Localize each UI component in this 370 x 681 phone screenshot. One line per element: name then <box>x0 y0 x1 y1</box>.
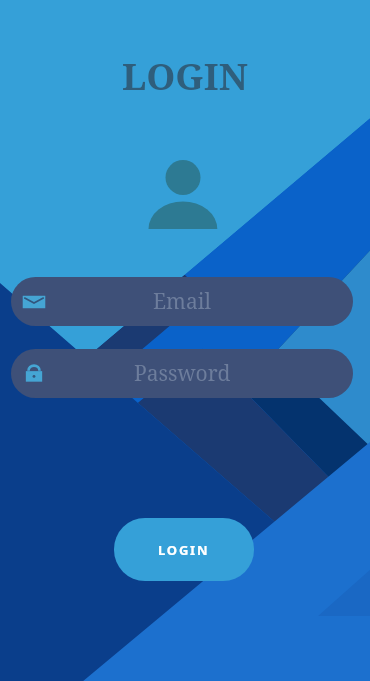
other: Password <box>22 362 46 386</box>
staticText: Password <box>134 359 231 388</box>
button[interactable]: LOGIN <box>114 518 254 581</box>
button[interactable]: Password <box>11 349 353 398</box>
button[interactable]: Email <box>11 277 353 326</box>
staticText: LOGIN <box>122 50 248 100</box>
other: Email <box>22 290 46 314</box>
staticText: Email <box>153 287 211 316</box>
staticText: LOGIN <box>158 541 210 559</box>
